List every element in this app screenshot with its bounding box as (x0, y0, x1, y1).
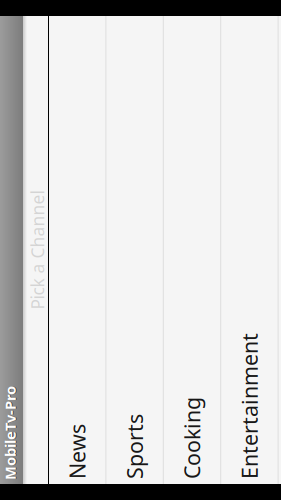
staticText: Entertainment (0, 345, 57, 373)
button[interactable]: Entertainment (0, 331, 281, 387)
button[interactable]: News (0, 158, 281, 215)
button[interactable]: Sports (0, 216, 281, 272)
button[interactable]: Cooking (0, 273, 281, 330)
